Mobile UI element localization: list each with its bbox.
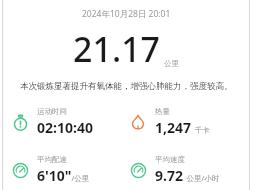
staticText: 21.17: [73, 26, 161, 72]
staticText: 公里: [164, 59, 179, 68]
staticText: 9.72 公里/小时: [155, 166, 220, 185]
staticText: 6'10"/公里: [37, 166, 90, 185]
other: 平均配速: [10, 160, 30, 180]
button[interactable]: 平均速度: [126, 154, 244, 186]
staticText: 平均配速: [37, 155, 67, 164]
other: 平均速度: [128, 160, 148, 180]
other: 热量: [128, 112, 148, 132]
staticText: 平均速度: [155, 155, 185, 164]
staticText: 本次锻炼显著提升有氧体能，增强心肺能力，强度较高。: [20, 81, 233, 92]
staticText: 1,247 千卡: [155, 118, 210, 137]
staticText: 2024年10月28日 20:01: [82, 8, 171, 20]
staticText: 热量: [155, 107, 170, 116]
button[interactable]: 平均配速: [8, 154, 126, 186]
staticText: 运动时间: [37, 107, 67, 116]
other: 运动时间: [10, 112, 30, 132]
button[interactable]: 热量: [126, 106, 244, 138]
staticText: 02:10:40: [37, 118, 93, 137]
button[interactable]: 运动时间: [8, 106, 126, 138]
